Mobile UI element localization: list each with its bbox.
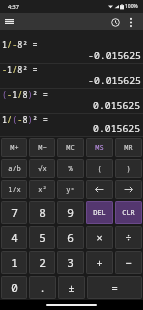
staticText: 0 bbox=[11, 280, 18, 295]
button[interactable]: . bbox=[29, 276, 56, 299]
button[interactable]: = bbox=[87, 276, 142, 299]
staticText: CLR bbox=[122, 208, 135, 218]
button[interactable]: √x bbox=[29, 159, 55, 178]
button[interactable]: (-1/8)² = bbox=[0, 89, 143, 114]
button[interactable]: M− bbox=[29, 138, 55, 157]
button[interactable]: MR bbox=[115, 138, 142, 157]
button[interactable]: yˣ bbox=[57, 180, 84, 199]
staticText: ( bbox=[97, 164, 102, 174]
button[interactable]: 1/(-8)² = bbox=[0, 114, 143, 137]
button[interactable]: 9 bbox=[57, 201, 84, 224]
staticText: -0.015625 bbox=[88, 49, 141, 62]
button[interactable]: M+ bbox=[1, 138, 27, 157]
button[interactable]: More options bbox=[124, 14, 137, 30]
staticText: 3 bbox=[67, 255, 74, 270]
staticText: MC bbox=[66, 143, 75, 153]
button[interactable]: 1/-8² = bbox=[0, 39, 143, 64]
staticText: 0.015625 bbox=[93, 122, 141, 135]
button[interactable]: CLR bbox=[115, 201, 142, 224]
staticText: M− bbox=[38, 143, 47, 153]
staticText: + bbox=[96, 255, 103, 270]
button[interactable]: Move cursor right bbox=[115, 180, 142, 199]
staticText: DEL bbox=[93, 208, 106, 218]
button[interactable]: a/b bbox=[1, 159, 27, 178]
button[interactable]: 1 bbox=[1, 251, 27, 274]
staticText: ± bbox=[68, 280, 75, 295]
button[interactable]: × bbox=[86, 226, 113, 249]
staticText: 4 bbox=[11, 230, 18, 245]
staticText: 1 bbox=[11, 255, 18, 270]
staticText: M+ bbox=[10, 143, 19, 153]
button[interactable]: 0 bbox=[1, 276, 27, 299]
staticText: 1/(-8)² = bbox=[2, 114, 48, 126]
button[interactable]: + bbox=[86, 251, 113, 274]
staticText: √x bbox=[38, 164, 47, 174]
staticText: = bbox=[111, 280, 118, 295]
staticText: 6 bbox=[67, 230, 74, 245]
button[interactable]: 1/x bbox=[1, 180, 27, 199]
staticText: -0.015625 bbox=[88, 74, 141, 87]
button[interactable]: 5 bbox=[29, 226, 55, 249]
staticText: yˣ bbox=[66, 185, 75, 195]
button[interactable]: Menu bbox=[0, 13, 19, 30]
staticText: MS bbox=[95, 143, 104, 153]
button[interactable]: 7 bbox=[1, 201, 27, 224]
button[interactable]: 3 bbox=[57, 251, 84, 274]
staticText: 7 bbox=[11, 205, 18, 220]
staticText: 100% bbox=[125, 3, 138, 10]
button[interactable]: History bbox=[107, 14, 124, 30]
button[interactable]: 2 bbox=[29, 251, 55, 274]
button[interactable]: x² bbox=[29, 180, 55, 199]
staticText: − bbox=[125, 255, 132, 270]
staticText: -1/8² = bbox=[2, 64, 38, 76]
button[interactable]: 4 bbox=[1, 226, 27, 249]
staticText: 1/-8² = bbox=[2, 39, 38, 51]
button[interactable]: ( bbox=[86, 159, 113, 178]
staticText: × bbox=[96, 230, 103, 245]
staticText: ÷ bbox=[125, 230, 132, 245]
staticText: 0.015625 bbox=[93, 99, 141, 112]
staticText: ) bbox=[126, 164, 131, 174]
button[interactable]: − bbox=[115, 251, 142, 274]
button[interactable]: MC bbox=[57, 138, 84, 157]
button[interactable]: -1/8² = bbox=[0, 64, 143, 89]
button[interactable]: MS bbox=[86, 138, 113, 157]
staticText: 5 bbox=[39, 230, 46, 245]
staticText: % bbox=[68, 164, 73, 174]
button[interactable]: 6 bbox=[57, 226, 84, 249]
staticText: a/b bbox=[8, 164, 21, 174]
staticText: . bbox=[39, 280, 46, 295]
staticText: 1/x bbox=[8, 185, 21, 195]
button[interactable]: % bbox=[57, 159, 84, 178]
button[interactable]: DEL bbox=[86, 201, 113, 224]
staticText: 8 bbox=[39, 205, 46, 220]
staticText: x² bbox=[38, 185, 47, 195]
staticText: 9 bbox=[67, 205, 74, 220]
button[interactable]: Move cursor left bbox=[86, 180, 113, 199]
button[interactable]: 8 bbox=[29, 201, 55, 224]
button[interactable]: ÷ bbox=[115, 226, 142, 249]
button[interactable]: ) bbox=[115, 159, 142, 178]
button[interactable]: ± bbox=[58, 276, 85, 299]
staticText: 2 bbox=[39, 255, 46, 270]
staticText: (-1/8)² = bbox=[2, 89, 48, 101]
staticText: 4:37 bbox=[8, 3, 19, 10]
staticText: MR bbox=[124, 143, 133, 153]
